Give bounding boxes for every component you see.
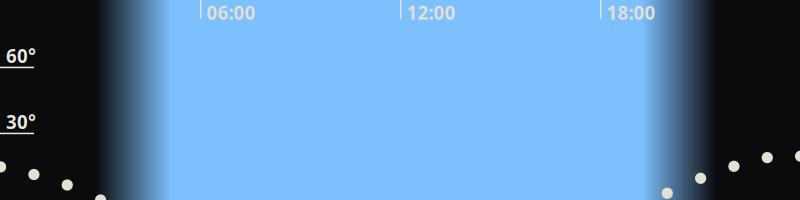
staticText: 60°	[6, 43, 36, 68]
staticText: 06:00	[206, 0, 255, 25]
staticText: 30°	[6, 109, 36, 134]
staticText: 12:00	[406, 0, 455, 25]
staticText: 18:00	[606, 0, 655, 25]
